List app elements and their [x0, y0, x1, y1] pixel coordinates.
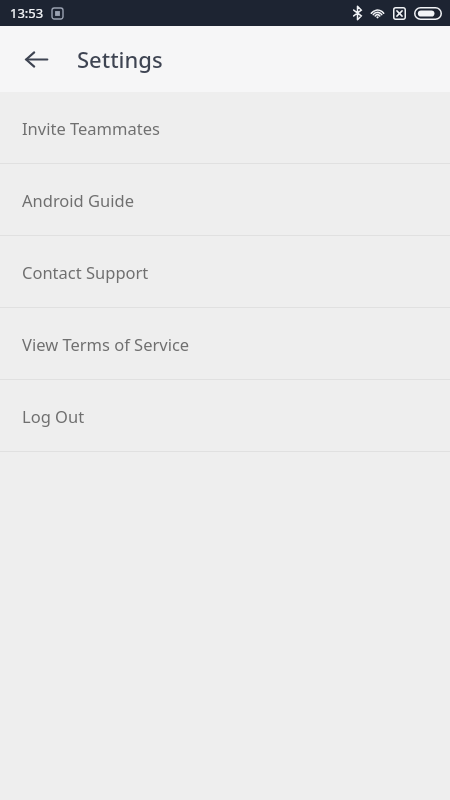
button[interactable]: Android Guide	[0, 164, 450, 235]
button[interactable]: View Terms of Service	[0, 308, 450, 379]
staticText: View Terms of Service	[22, 333, 190, 355]
button[interactable]: Invite Teammates	[0, 92, 450, 163]
button[interactable]: Log Out	[0, 380, 450, 451]
staticText: Contact Support	[22, 261, 149, 283]
button[interactable]: Contact Support	[0, 236, 450, 307]
staticText: Android Guide	[22, 189, 134, 211]
button[interactable]: Back	[12, 35, 60, 83]
staticText: 13:53	[10, 4, 44, 22]
staticText: Settings	[77, 44, 163, 74]
staticText: Log Out	[22, 405, 85, 427]
staticText: Invite Teammates	[22, 117, 160, 139]
